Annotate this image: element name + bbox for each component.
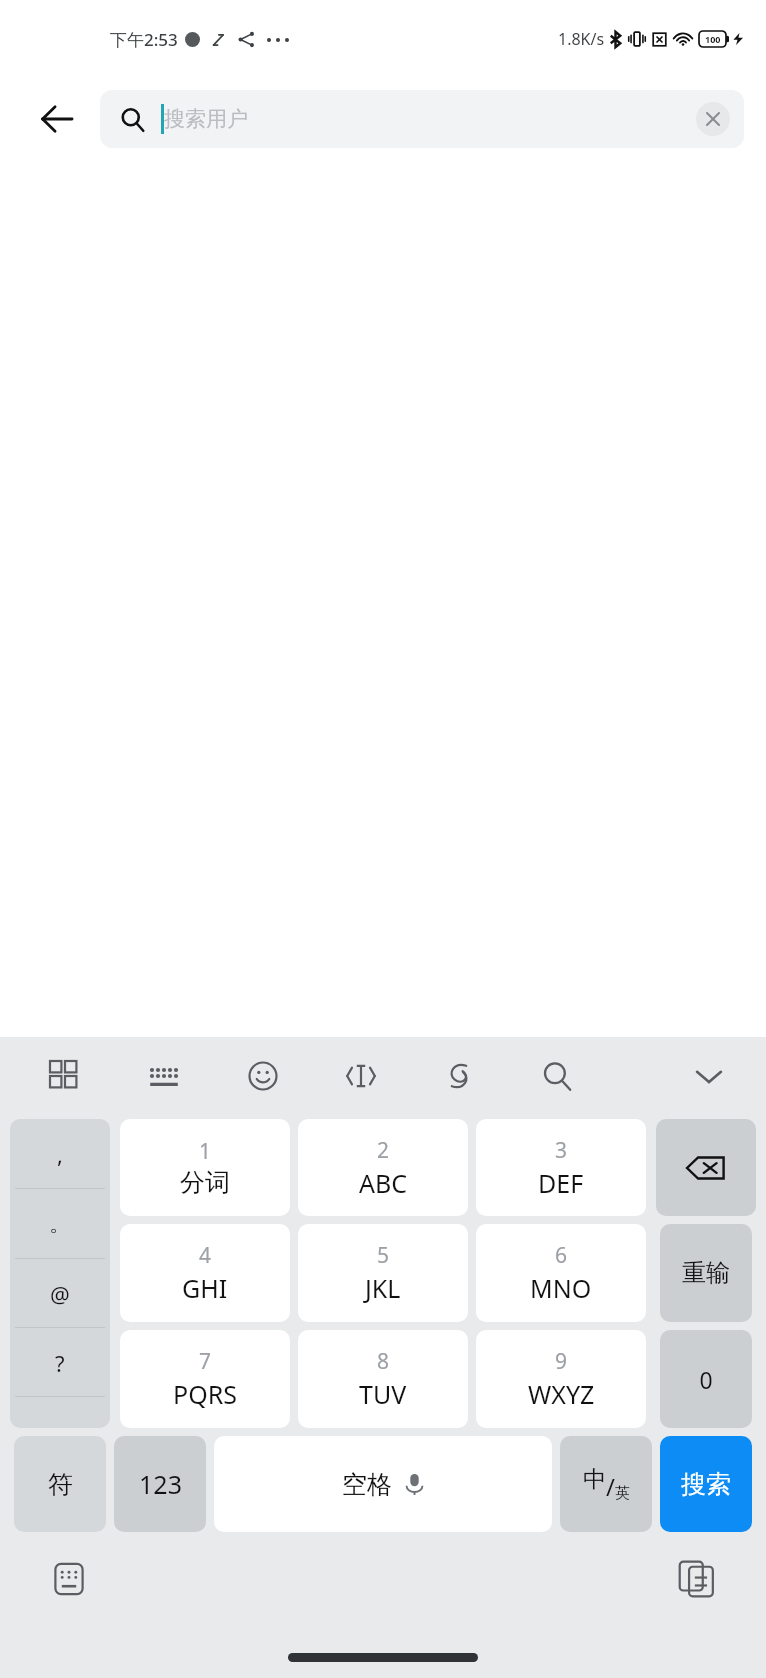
staticText: DEF (538, 1166, 584, 1200)
staticText: TUV (359, 1377, 407, 1411)
staticText: 5 (377, 1241, 390, 1270)
staticText: PQRS (173, 1377, 237, 1411)
button[interactable]: 符 (14, 1436, 106, 1532)
staticText: 0 (699, 1364, 713, 1395)
staticText: 搜索用户 (164, 106, 248, 132)
button[interactable]: , (10, 1119, 110, 1189)
staticText: 1 (199, 1137, 212, 1166)
staticText: , (57, 1139, 63, 1169)
staticText: 下午2:53 (110, 28, 178, 51)
button[interactable]: Emoji (236, 1049, 290, 1103)
button[interactable]: Search (530, 1049, 584, 1103)
button[interactable]: 5 (298, 1224, 468, 1322)
button[interactable]: 9 (476, 1330, 646, 1428)
staticText: JKL (365, 1271, 401, 1305)
button[interactable]: Keyboard layout (137, 1049, 191, 1103)
button[interactable]: 1 (120, 1119, 290, 1216)
button[interactable]: 2 (298, 1119, 468, 1216)
button[interactable]: Back (26, 88, 88, 150)
staticText: 9 (555, 1347, 568, 1376)
button[interactable]: 123 (114, 1436, 206, 1532)
staticText: MNO (530, 1271, 592, 1305)
button[interactable]: 8 (298, 1330, 468, 1428)
button[interactable]: 6 (476, 1224, 646, 1322)
button[interactable]: 4 (120, 1224, 290, 1322)
staticText: 空格 (342, 1469, 392, 1500)
staticText: 符 (48, 1469, 73, 1500)
staticText: 重输 (682, 1258, 730, 1288)
staticText: 3 (555, 1136, 568, 1165)
button[interactable]: Move cursor (334, 1049, 388, 1103)
button[interactable]: 空格 (214, 1436, 552, 1532)
button[interactable]: @ (10, 1259, 110, 1328)
staticText: 6 (555, 1241, 568, 1270)
button[interactable]: 0 (660, 1330, 752, 1428)
button[interactable]: 3 (476, 1119, 646, 1216)
staticText: 搜索 (681, 1469, 731, 1500)
button[interactable]: Panel (38, 1049, 92, 1103)
staticText: 英 (615, 1484, 630, 1503)
staticText: 分词 (180, 1167, 230, 1198)
staticText: ? (55, 1348, 65, 1378)
button[interactable]: 。 (10, 1189, 110, 1259)
button[interactable]: Clip (432, 1049, 486, 1103)
button[interactable]: 搜索用户 (100, 90, 744, 148)
button[interactable]: 7 (120, 1330, 290, 1428)
staticText: 。 (49, 1210, 71, 1238)
staticText: ABC (359, 1166, 408, 1200)
button[interactable]: 重输 (660, 1224, 752, 1322)
button[interactable]: Clipboard (672, 1554, 722, 1604)
staticText: WXYZ (528, 1377, 595, 1411)
staticText: 123 (139, 1467, 182, 1501)
staticText: @ (50, 1279, 70, 1309)
button[interactable]: ? (10, 1328, 110, 1397)
staticText: / (606, 1470, 615, 1503)
staticText: 100 (705, 33, 721, 45)
staticText: 4 (199, 1241, 212, 1270)
staticText: GHI (182, 1271, 228, 1305)
button[interactable]: Switch keyboard (44, 1554, 94, 1604)
button[interactable]: Hide keyboard (682, 1049, 736, 1103)
staticText: 8 (377, 1347, 390, 1376)
button[interactable]: 搜索 (660, 1436, 752, 1532)
staticText: 2 (377, 1136, 390, 1165)
staticText: 1.8K/s (558, 28, 605, 50)
staticText: 7 (199, 1347, 212, 1376)
button[interactable]: Clear (696, 102, 730, 136)
button[interactable]: 中 (560, 1436, 652, 1532)
button[interactable]: Backspace (656, 1119, 756, 1216)
staticText: 中 (583, 1465, 606, 1494)
